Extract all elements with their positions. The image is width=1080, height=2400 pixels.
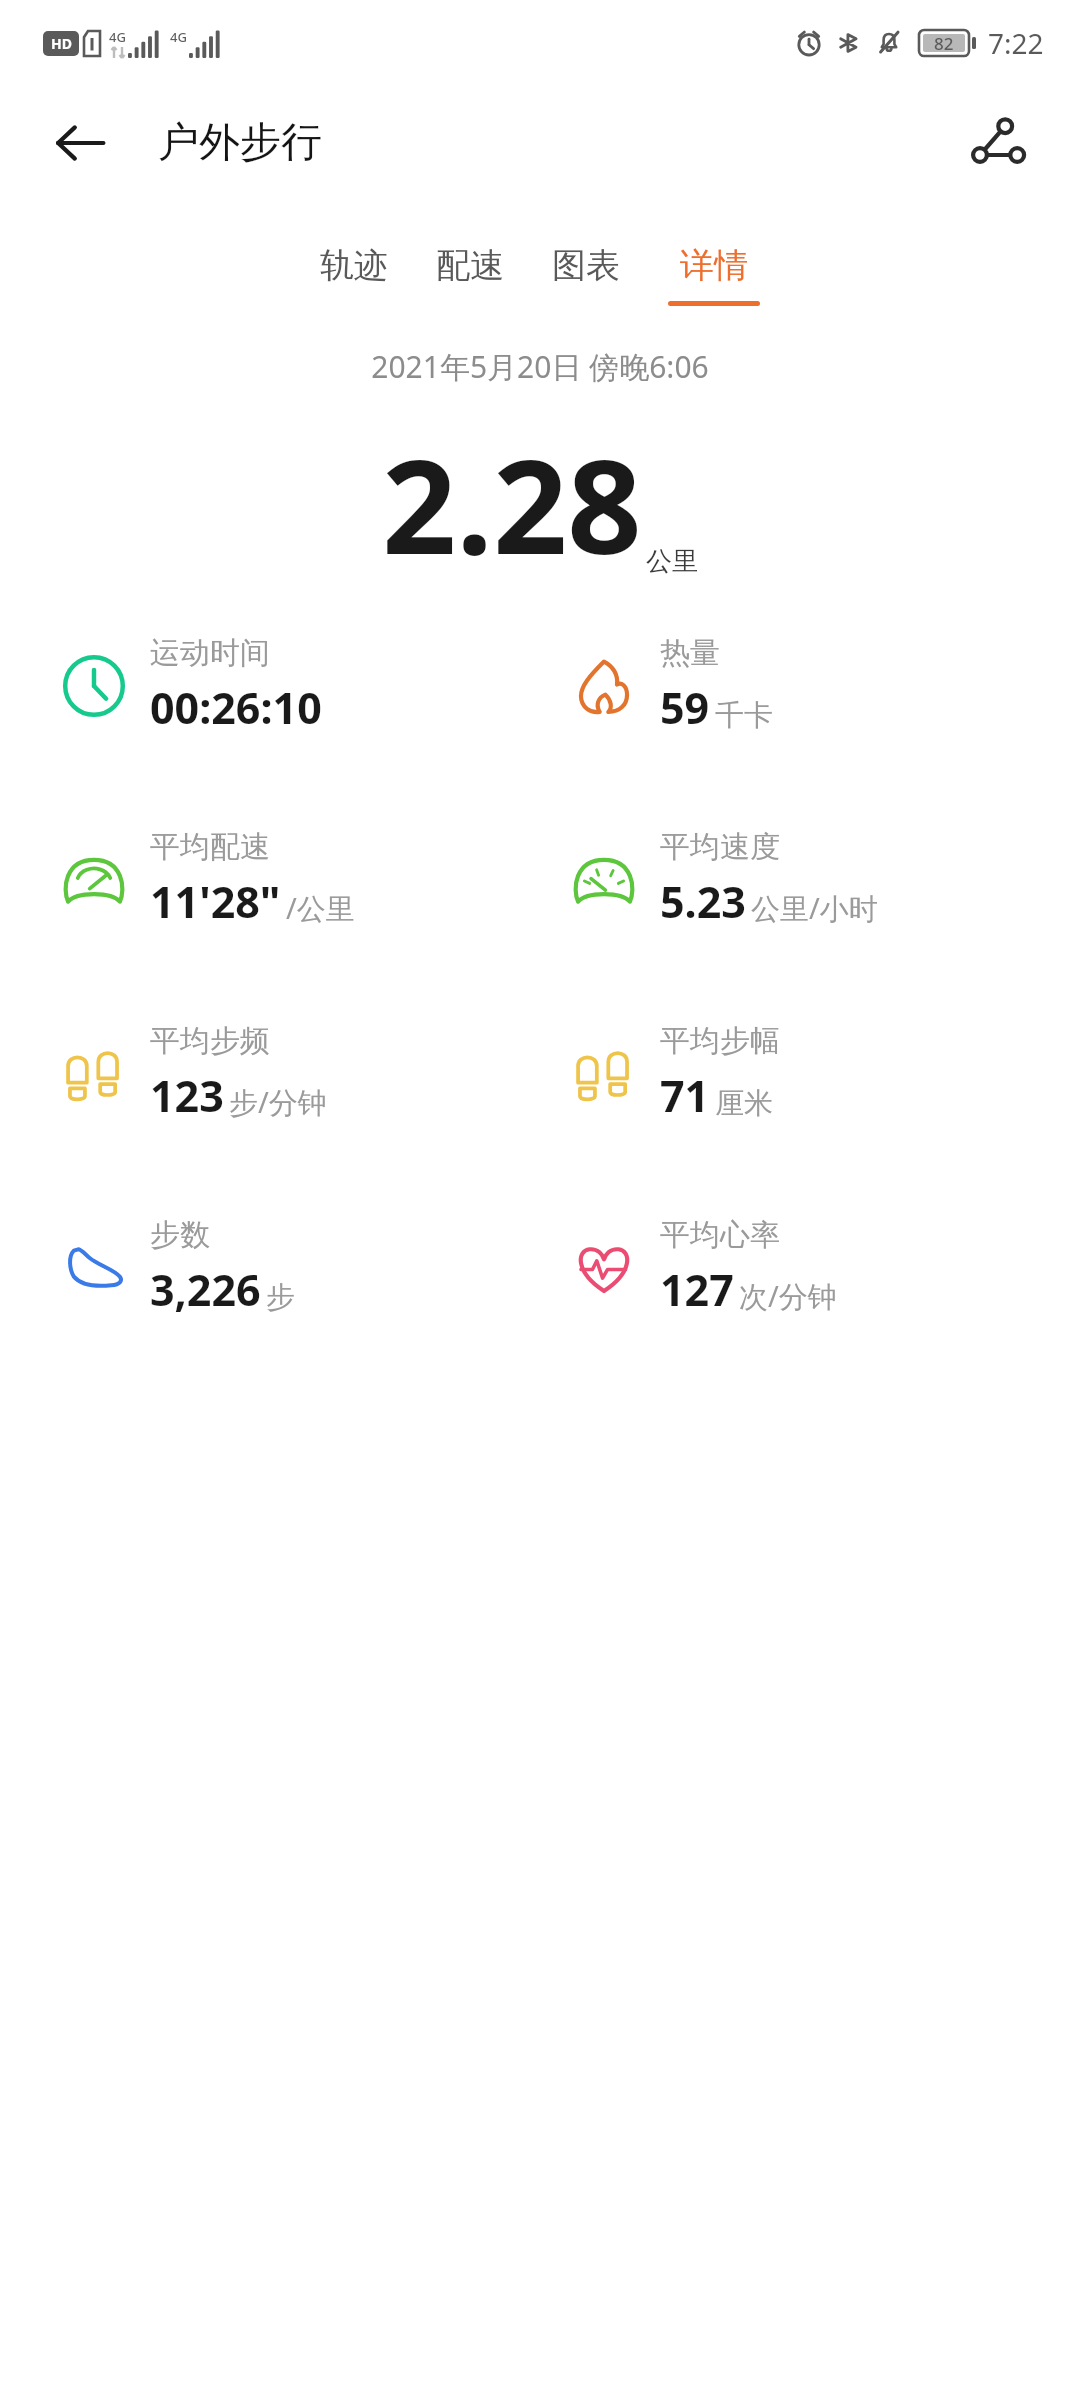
staticText: 热量 bbox=[660, 634, 720, 672]
staticText: 5.23 bbox=[660, 872, 746, 931]
staticText: 平均配速 bbox=[150, 828, 270, 866]
button[interactable]: 平均心率 bbox=[540, 1216, 1080, 1319]
staticText: 平均步频 bbox=[150, 1022, 270, 1060]
staticText: 平均步幅 bbox=[660, 1022, 780, 1060]
button[interactable]: 平均步频 bbox=[0, 1022, 540, 1125]
staticText: 123 bbox=[150, 1066, 224, 1125]
staticText: 平均心率 bbox=[660, 1216, 780, 1254]
staticText: 户外步行 bbox=[158, 117, 322, 169]
staticText: 3,226 bbox=[150, 1260, 261, 1319]
button[interactable]: 运动时间 bbox=[0, 634, 540, 737]
staticText: 步数 bbox=[150, 1216, 210, 1254]
staticText: 步 bbox=[266, 1279, 295, 1316]
staticText: 11'28" bbox=[150, 872, 281, 931]
staticText: 次/分钟 bbox=[739, 1276, 837, 1316]
staticText: 运动时间 bbox=[150, 634, 270, 672]
staticText: 4G bbox=[170, 28, 187, 46]
button[interactable]: 平均速度 bbox=[540, 828, 1080, 931]
button[interactable]: 热量 bbox=[540, 634, 1080, 737]
staticText: 步/分钟 bbox=[229, 1082, 327, 1122]
button[interactable]: 配速 bbox=[412, 238, 528, 312]
staticText: 图表 bbox=[552, 244, 620, 287]
staticText: HD bbox=[51, 34, 72, 53]
button[interactable]: Back bbox=[46, 109, 114, 177]
staticText: /公里 bbox=[286, 888, 355, 928]
staticText: 127 bbox=[660, 1260, 734, 1319]
staticText: 71 bbox=[660, 1066, 710, 1125]
staticText: 4G bbox=[109, 28, 126, 46]
staticText: 2.28 bbox=[382, 415, 642, 592]
staticText: 公里/小时 bbox=[751, 888, 878, 928]
staticText: 82 bbox=[934, 32, 954, 55]
button[interactable]: 轨迹 bbox=[296, 238, 412, 312]
staticText: 59 bbox=[660, 678, 710, 737]
staticText: 轨迹 bbox=[320, 244, 388, 287]
button[interactable]: 平均步幅 bbox=[540, 1022, 1080, 1125]
staticText: 平均速度 bbox=[660, 828, 780, 866]
staticText: 公里 bbox=[646, 545, 698, 578]
staticText: 详情 bbox=[680, 244, 748, 287]
staticText: 千卡 bbox=[715, 697, 773, 734]
button[interactable]: 步数 bbox=[0, 1216, 540, 1319]
staticText: 配速 bbox=[436, 244, 504, 287]
button[interactable]: 平均配速 bbox=[0, 828, 540, 931]
button[interactable]: Share bbox=[960, 105, 1036, 181]
button[interactable]: 图表 bbox=[528, 238, 644, 312]
staticText: 厘米 bbox=[715, 1085, 773, 1122]
button[interactable]: 详情 bbox=[644, 238, 784, 312]
staticText: 00:26:10 bbox=[150, 678, 322, 737]
staticText: 2021年5月20日 傍晚6:06 bbox=[371, 346, 709, 387]
staticText: 7:22 bbox=[988, 24, 1044, 62]
